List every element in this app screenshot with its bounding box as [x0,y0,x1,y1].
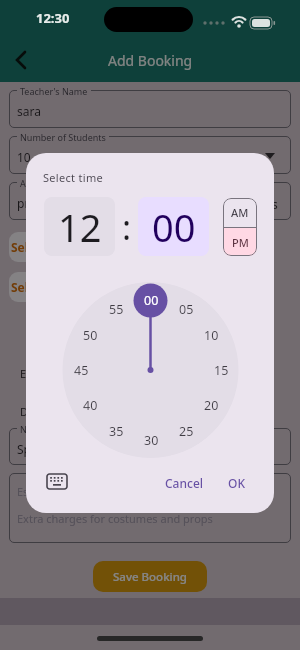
button[interactable]: 10 [197,326,225,344]
staticText: sara [17,103,41,119]
button[interactable] [9,90,291,128]
staticText: Select Date [11,239,79,255]
staticText: 30 [144,432,159,449]
staticText: Select Time [11,279,80,295]
staticText: PM [232,235,249,250]
staticText: Cancel [165,475,204,491]
staticText: Age Group [20,177,66,189]
staticText: Notes [20,423,45,435]
staticText: Save Booking [113,569,188,585]
button[interactable]: 30 [137,431,165,449]
button[interactable]: 12 [44,197,115,256]
staticText: 55 [109,301,124,318]
button[interactable] [9,136,291,174]
staticText: Select time [43,170,103,185]
staticText: OK [228,475,245,491]
button[interactable]: Save Booking [93,561,207,592]
button[interactable]: 25 [172,422,200,440]
staticText: 15 [214,362,229,379]
button[interactable] [8,46,36,74]
staticText: Special requests [17,441,109,457]
staticText: 35 [109,423,124,440]
staticText: 40 [83,397,98,414]
staticText: 50 [83,327,98,344]
button[interactable] [9,182,291,220]
button[interactable]: 45 [67,361,95,379]
button[interactable]: Select Time [9,272,127,302]
staticText: 45 [74,362,89,379]
button[interactable]: 35 [102,422,130,440]
button[interactable]: 40 [76,396,104,414]
staticText: 00 [152,201,196,253]
button[interactable]: 15 [207,361,235,379]
staticText: Date not selected [20,404,111,419]
staticText: 00 [144,292,159,309]
staticText: 12 [58,201,102,253]
button[interactable]: 50 [76,326,104,344]
staticText: Essential items to bring for the [17,484,176,499]
button[interactable]: 05 [172,300,200,318]
staticText: 10 [204,327,219,344]
staticText: 25 [179,423,194,440]
button[interactable]: Select Date [9,232,127,262]
staticText: AM [231,205,249,220]
button[interactable]: 00 [137,291,165,309]
staticText: Extra charges for costumes and props [17,511,213,526]
staticText: Number of Students [20,131,106,143]
button[interactable]: OK [220,473,252,493]
staticText: preschoolers [17,195,90,211]
button[interactable] [43,470,71,494]
button[interactable]: AM [223,198,257,227]
staticText: 20 [204,397,219,414]
button[interactable]: 20 [197,396,225,414]
button[interactable] [9,428,291,465]
button[interactable]: 00 [138,197,209,256]
staticText: : [122,204,132,250]
staticText: 12:30 [36,9,70,27]
button[interactable]: PM [223,228,257,256]
staticText: End time not set [20,366,105,381]
button[interactable]: Cancel [157,473,211,493]
staticText: s [272,196,278,212]
staticText: 10 [17,149,31,165]
button[interactable]: 55 [102,300,130,318]
staticText: Teacher's Name [20,85,88,97]
staticText: Add Booking [108,51,193,70]
staticText: 05 [179,301,194,318]
